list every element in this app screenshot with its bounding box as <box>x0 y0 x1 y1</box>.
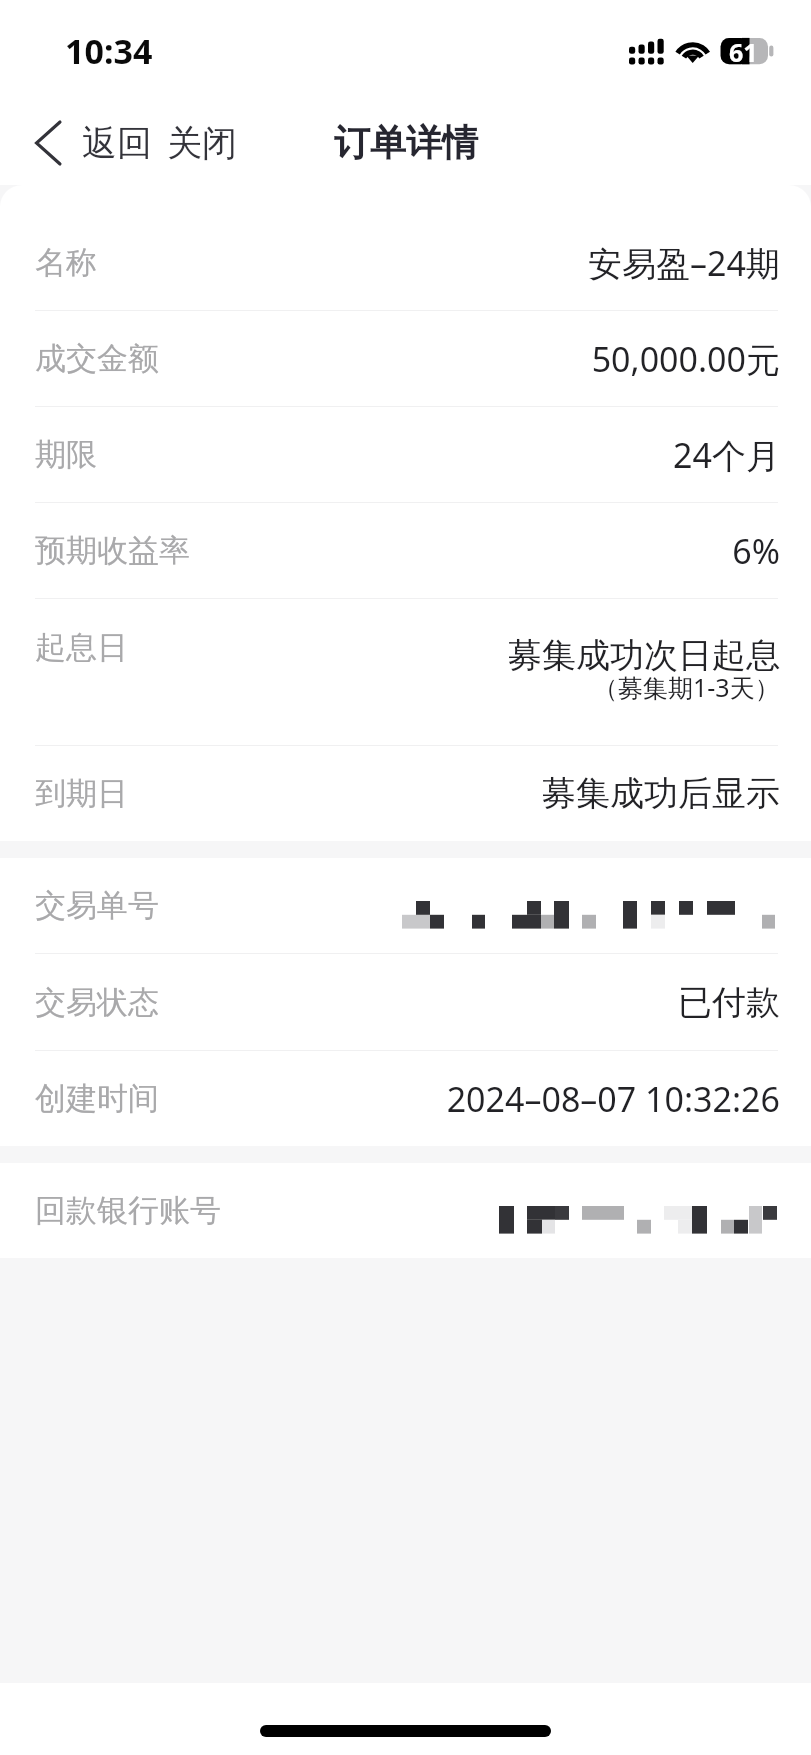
staticText: 10:34 <box>65 28 153 74</box>
staticText: 募集成功次日起息 <box>508 634 780 677</box>
staticText: 订单详情 <box>334 120 478 165</box>
staticText: 名称 <box>35 243 97 282</box>
staticText: （募集期1-3天） <box>593 670 780 704</box>
button[interactable]: 起息日 <box>0 599 811 746</box>
other: Back <box>34 119 62 167</box>
staticText: 2024–08–07 10:32:26 <box>446 1076 780 1122</box>
button[interactable]: Back <box>0 111 156 175</box>
button[interactable]: 成交金额 <box>0 311 811 407</box>
staticText: 起息日 <box>35 628 128 667</box>
button[interactable]: 回款银行账号 <box>0 1163 811 1258</box>
staticText: 返回 <box>82 121 152 165</box>
staticText: 6% <box>732 528 780 574</box>
staticText: 到期日 <box>35 774 128 813</box>
button[interactable]: 创建时间 <box>0 1051 811 1146</box>
button[interactable]: 期限 <box>0 407 811 503</box>
staticText: 50,000.00元 <box>591 336 780 382</box>
staticText: 预期收益率 <box>35 531 190 570</box>
staticText: 61 <box>729 35 758 69</box>
button[interactable]: 预期收益率 <box>0 503 811 599</box>
button[interactable]: 交易状态 <box>0 954 811 1051</box>
staticText: 成交金额 <box>35 339 159 378</box>
button[interactable]: 名称 <box>0 215 811 311</box>
other: 回款银行账号（已隐藏） <box>499 1206 780 1234</box>
staticText: 回款银行账号 <box>35 1191 221 1230</box>
staticText: 安易盈–24期 <box>588 240 780 286</box>
staticText: 期限 <box>35 435 97 474</box>
staticText: 24个月 <box>673 432 780 478</box>
button[interactable]: 交易单号 <box>0 858 811 954</box>
staticText: 交易状态 <box>35 983 159 1022</box>
button[interactable]: 到期日 <box>0 746 811 841</box>
staticText: 交易单号 <box>35 886 159 925</box>
staticText: 募集成功后显示 <box>542 772 780 815</box>
staticText: 已付款 <box>678 981 780 1024</box>
staticText: 创建时间 <box>35 1079 159 1118</box>
other: 交易单号（已隐藏） <box>402 901 780 929</box>
button[interactable]: 关闭 <box>156 113 253 173</box>
